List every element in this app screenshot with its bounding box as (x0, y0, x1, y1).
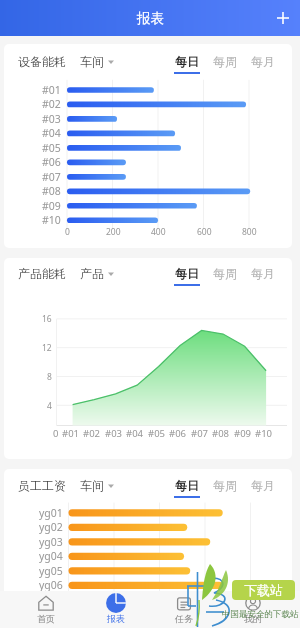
button[interactable]: 每周 (206, 474, 244, 496)
staticText: 每日 (175, 54, 199, 69)
button[interactable]: 每日 (168, 474, 206, 496)
staticText: 0 (65, 226, 70, 238)
button[interactable]: 每日 (168, 262, 206, 284)
staticText: 400 (151, 226, 166, 238)
staticText: yg07 (39, 593, 63, 607)
button[interactable]: 每月 (244, 474, 282, 496)
staticText: 任务 (175, 613, 193, 624)
staticText: yg05 (39, 564, 63, 578)
staticText: 800 (242, 226, 257, 238)
staticText: #05 (148, 427, 166, 440)
staticText: yg01 (39, 506, 63, 520)
staticText: 产品能耗 (18, 266, 66, 281)
staticText: 每月 (251, 266, 275, 281)
staticText: #07 (191, 427, 209, 440)
staticText: #07 (42, 170, 61, 184)
staticText: #04 (126, 427, 144, 440)
staticText: 车间 (80, 478, 104, 493)
staticText: 中国最安全的下载站 (222, 609, 299, 620)
staticText: 员工工资 (18, 478, 66, 493)
staticText: #06 (169, 427, 187, 440)
staticText: 产品 (80, 266, 104, 281)
staticText: #01 (42, 83, 61, 97)
staticText: 车间 (80, 54, 104, 69)
staticText: #02 (42, 97, 61, 111)
button[interactable]: 产品 (80, 266, 114, 281)
staticText: 下载站 (244, 582, 283, 598)
staticText: #10 (42, 213, 61, 227)
staticText: 200 (106, 226, 121, 238)
staticText: yg02 (39, 520, 63, 534)
staticText: 每周 (213, 266, 237, 281)
button[interactable]: 每日 (168, 50, 206, 72)
staticText: 16 (42, 313, 52, 325)
staticText: yg08 (39, 607, 63, 619)
staticText: 每周 (213, 54, 237, 69)
staticText: yg06 (39, 578, 63, 592)
button[interactable]: 每周 (206, 50, 244, 72)
button[interactable]: 我的 (229, 591, 277, 628)
button[interactable]: 每月 (244, 262, 282, 284)
staticText: 0 (53, 427, 59, 440)
staticText: #05 (42, 141, 61, 155)
staticText: 12 (42, 342, 52, 354)
button[interactable]: 每月 (244, 50, 282, 72)
staticText: 设备能耗 (18, 54, 66, 69)
staticText: yg04 (39, 549, 63, 563)
staticText: #08 (42, 184, 61, 198)
staticText: 每月 (251, 54, 275, 69)
staticText: #08 (212, 427, 230, 440)
staticText: 报表 (137, 10, 164, 27)
staticText: 首页 (37, 613, 55, 624)
button[interactable]: 首页 (22, 591, 70, 628)
staticText: 每月 (251, 478, 275, 493)
staticText: #10 (255, 427, 273, 440)
staticText: #04 (42, 126, 61, 140)
staticText: #02 (83, 427, 101, 440)
staticText: #03 (105, 427, 123, 440)
button[interactable]: Add (266, 1, 300, 35)
staticText: #03 (42, 112, 61, 126)
button[interactable]: 任务 (160, 591, 208, 628)
staticText: #09 (234, 427, 252, 440)
staticText: yg03 (39, 535, 63, 549)
button[interactable]: 车间 (80, 54, 114, 69)
button[interactable]: 报表 (92, 591, 140, 628)
staticText: 4 (47, 400, 52, 412)
staticText: 每日 (175, 266, 199, 281)
button[interactable]: 车间 (80, 478, 114, 493)
staticText: #09 (42, 199, 61, 213)
staticText: 每日 (175, 478, 199, 493)
staticText: 8 (47, 371, 52, 383)
staticText: 我的 (244, 613, 262, 624)
staticText: #01 (62, 427, 80, 440)
staticText: #06 (42, 155, 61, 169)
staticText: 报表 (107, 613, 125, 624)
staticText: 600 (197, 226, 212, 238)
button[interactable]: 每周 (206, 262, 244, 284)
staticText: 每周 (213, 478, 237, 493)
